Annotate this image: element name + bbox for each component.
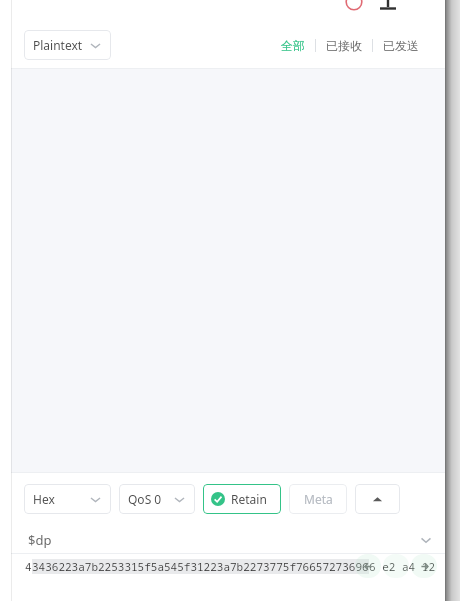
staticText: QoS 0 xyxy=(128,491,162,507)
button[interactable]: Meta xyxy=(289,484,347,514)
staticText: 已发送 xyxy=(383,38,419,53)
button[interactable]: Hex xyxy=(24,484,111,514)
other: Record xyxy=(345,0,363,11)
button[interactable]: Collapse xyxy=(355,484,400,514)
staticText: Retain xyxy=(231,491,267,507)
button[interactable]: Previous xyxy=(355,554,381,578)
button[interactable]: 已接收 xyxy=(316,30,372,60)
staticText: 3436223a7b2253315f5a545f31223a7b2273775f… xyxy=(32,559,369,574)
staticText: 全部 xyxy=(281,38,305,53)
other: Download xyxy=(378,0,398,12)
staticText: Plaintext xyxy=(33,37,83,53)
staticText: Meta xyxy=(304,491,333,507)
button[interactable]: 已发送 xyxy=(373,30,429,60)
staticText: $dp xyxy=(28,531,52,549)
button[interactable]: Next xyxy=(411,554,437,578)
button[interactable]: 全部 xyxy=(271,30,315,60)
button[interactable]: Scroll xyxy=(383,554,409,578)
button[interactable]: Plaintext xyxy=(24,30,111,60)
staticText: 6 e2 a4 12 xyxy=(369,559,435,574)
staticText: 4 xyxy=(25,559,32,574)
staticText: 已接收 xyxy=(326,38,362,53)
button[interactable]: $dp xyxy=(11,526,445,554)
button[interactable]: Retain xyxy=(203,484,281,514)
staticText: Hex xyxy=(33,491,55,507)
button[interactable]: QoS 0 xyxy=(119,484,195,514)
